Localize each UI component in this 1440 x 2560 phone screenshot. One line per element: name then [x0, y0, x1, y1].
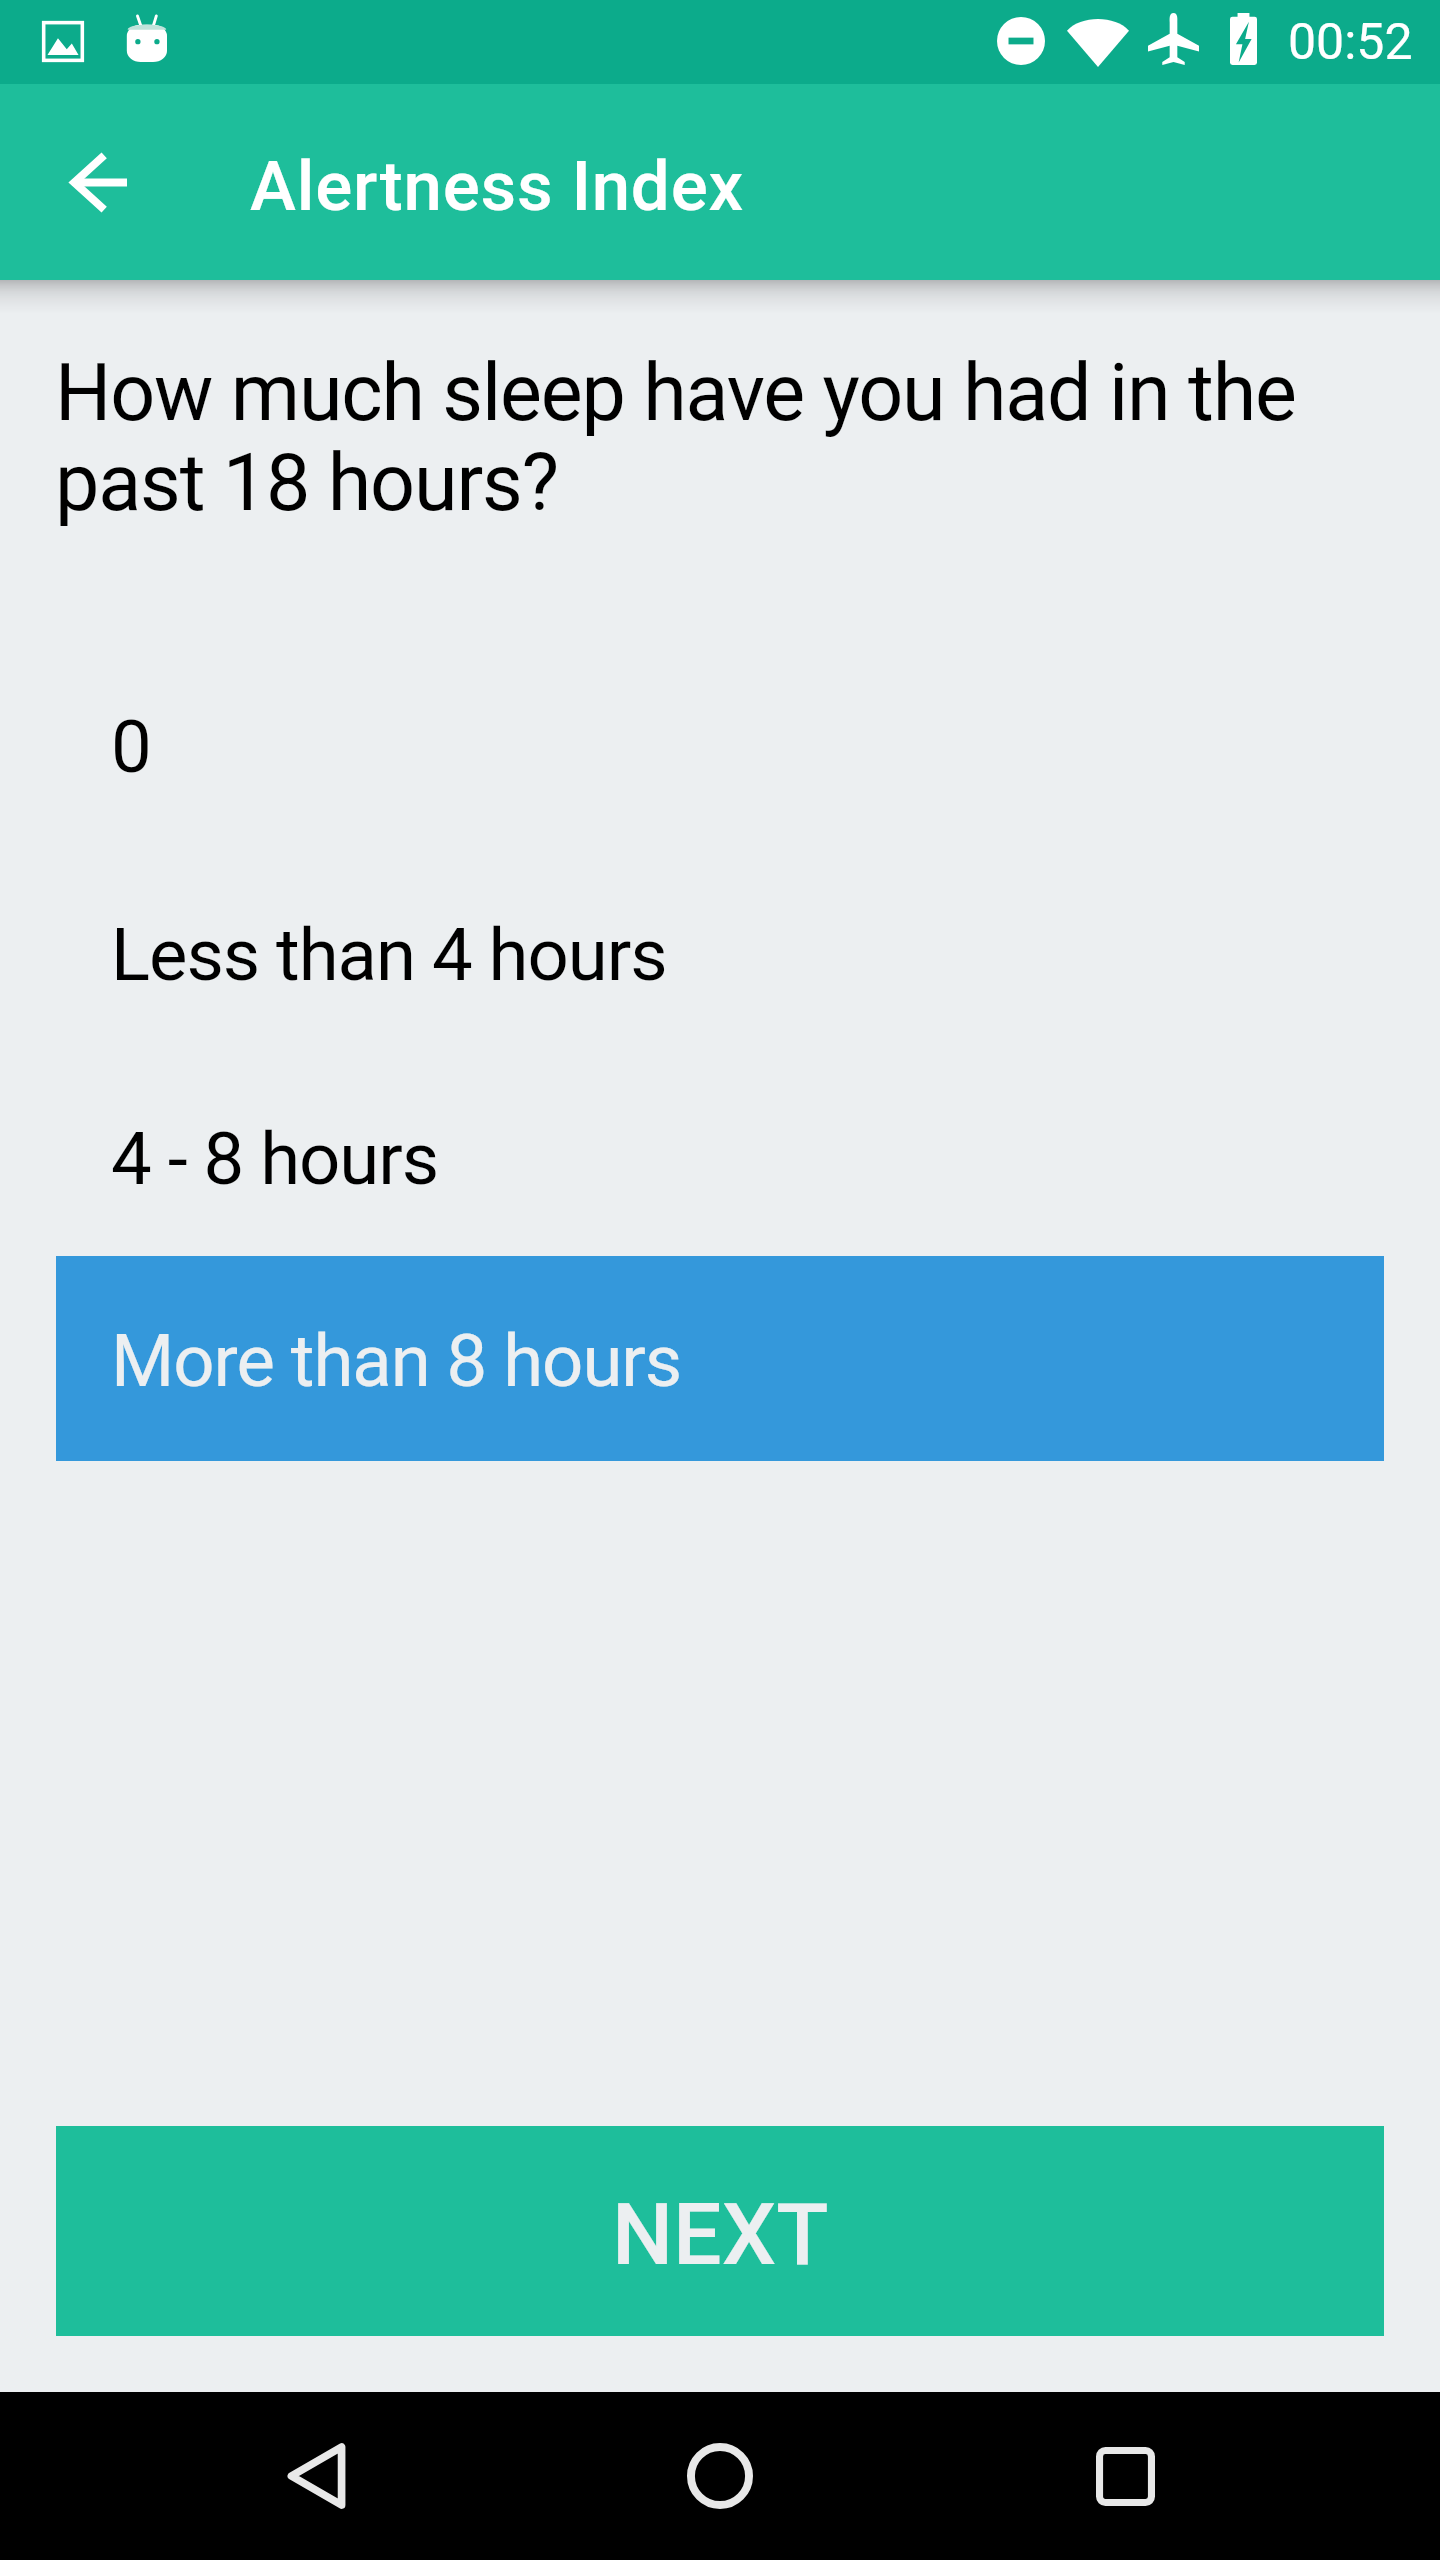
button[interactable]: More than 8 hours	[56, 1256, 1384, 1461]
staticText: More than 8 hours	[111, 1319, 682, 1404]
button[interactable]: Navigate up	[42, 126, 154, 238]
staticText: How much sleep have you had in the past …	[55, 347, 1350, 530]
button[interactable]: NEXT	[56, 2126, 1384, 2336]
button[interactable]: Home	[655, 2411, 785, 2541]
staticText: Less than 4 hours	[111, 913, 667, 998]
staticText: Alertness Index	[250, 146, 744, 227]
staticText: 4 - 8 hours	[111, 1117, 439, 1202]
staticText: 0	[111, 705, 151, 790]
button[interactable]: 0	[56, 645, 1384, 850]
button[interactable]: 4 - 8 hours	[56, 1057, 1384, 1262]
button[interactable]: Back	[251, 2411, 381, 2541]
button[interactable]: Recent apps	[1060, 2411, 1190, 2541]
staticText: NEXT	[612, 2184, 829, 2285]
button[interactable]: Less than 4 hours	[56, 853, 1384, 1058]
staticText: 00:52	[1288, 13, 1413, 72]
